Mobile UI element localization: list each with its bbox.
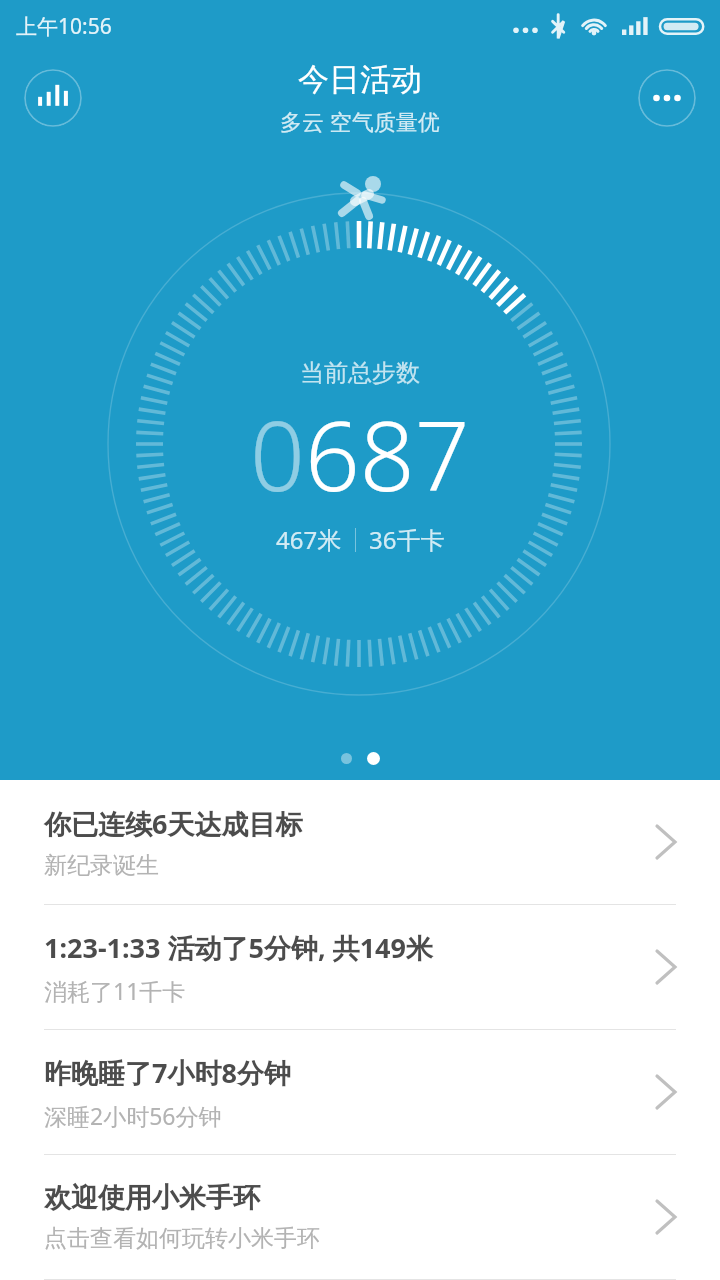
staticText: 昨晚睡了7小时8分钟	[44, 1054, 291, 1091]
button[interactable]: 昨晚睡了7小时8分钟	[0, 1030, 720, 1154]
staticText: 新纪录诞生	[44, 851, 159, 880]
staticText: 你已连续6天达成目标	[44, 805, 303, 842]
button[interactable]: 欢迎使用小米手环	[0, 1155, 720, 1279]
staticText: 当前总步数	[300, 358, 420, 388]
staticText: 1:23-1:33 活动了5分钟, 共149米	[44, 929, 433, 966]
staticText: 欢迎使用小米手环	[44, 1181, 260, 1215]
staticText: 多云 空气质量优	[280, 106, 440, 136]
staticText: 今日活动	[298, 60, 422, 99]
staticText: 点击查看如何玩转小米手环	[44, 1224, 320, 1253]
staticText: 上午10:56	[16, 12, 112, 41]
staticText: 467米	[276, 523, 342, 556]
staticText: 0	[250, 388, 305, 519]
staticText: 消耗了11千卡	[44, 975, 186, 1006]
button[interactable]: Statistics	[24, 69, 82, 127]
button[interactable]: 你已连续6天达成目标	[0, 780, 720, 904]
staticText: 深睡2小时56分钟	[44, 1100, 222, 1131]
staticText: 36千卡	[369, 523, 445, 556]
button[interactable]: 1:23-1:33 活动了5分钟, 共149米	[0, 905, 720, 1029]
button[interactable]: More options	[638, 69, 696, 127]
staticText: 687	[305, 388, 470, 519]
